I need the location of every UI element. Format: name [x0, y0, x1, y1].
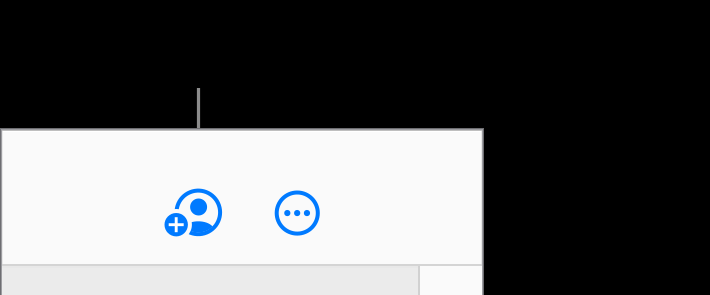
button[interactable]: Add Person — [0, 0, 710, 295]
button[interactable]: More — [0, 0, 710, 295]
